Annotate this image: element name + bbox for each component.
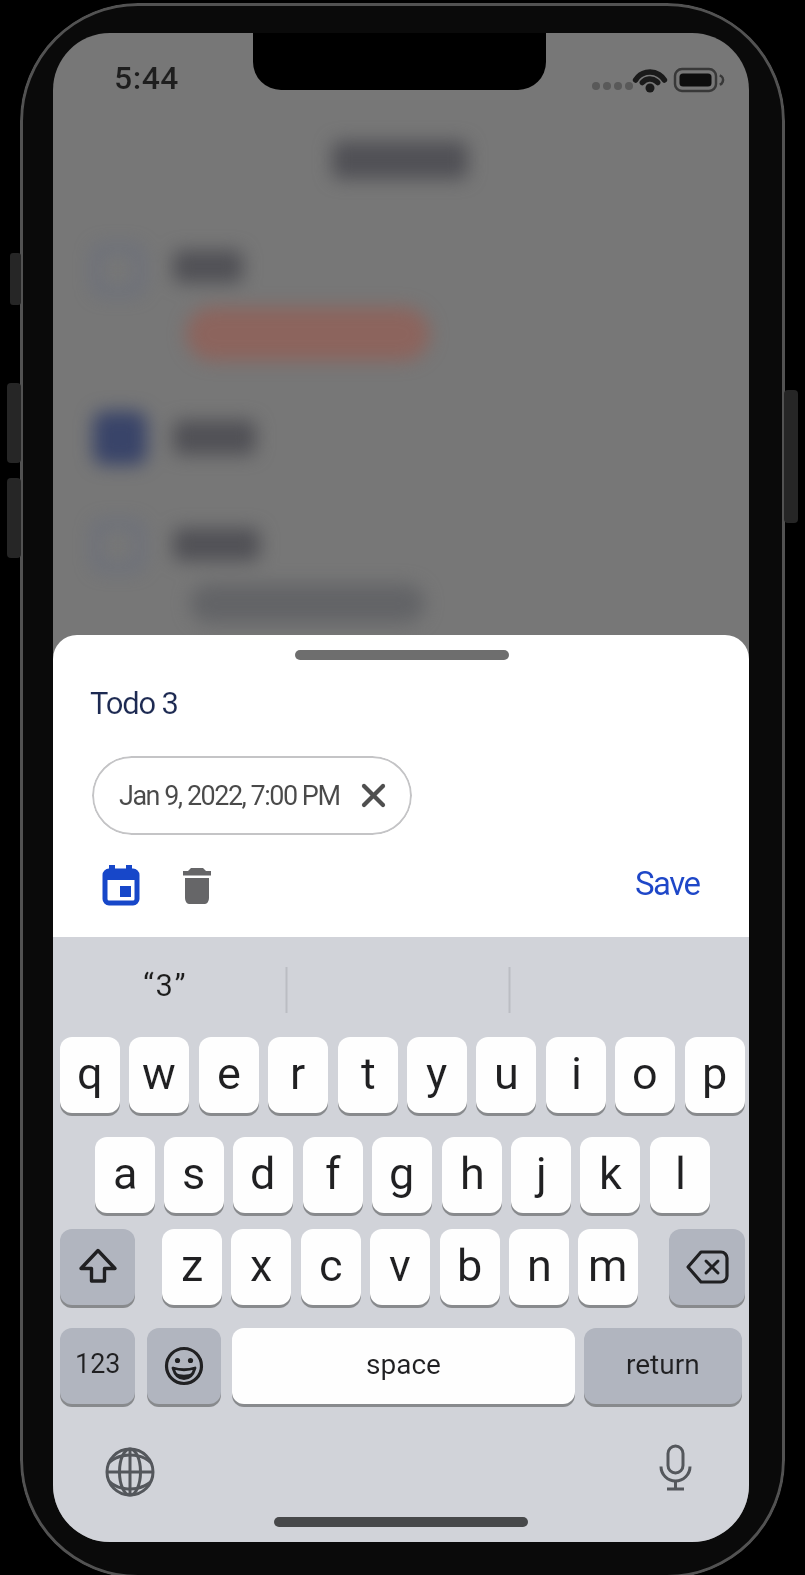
button[interactable]: t [338, 1037, 398, 1113]
staticText: s [182, 1147, 206, 1200]
staticText: j [536, 1147, 547, 1200]
button[interactable]: space [232, 1328, 575, 1404]
staticText: m [588, 1239, 628, 1292]
button[interactable]: j [511, 1137, 571, 1213]
button[interactable] [649, 1442, 701, 1494]
staticText: g [389, 1147, 415, 1200]
button[interactable]: Save [635, 864, 700, 903]
button[interactable]: y [407, 1037, 467, 1113]
staticText: z [181, 1239, 204, 1292]
button[interactable]: f [303, 1137, 363, 1213]
button[interactable]: o [615, 1037, 675, 1113]
staticText: t [361, 1047, 376, 1100]
button[interactable]: m [578, 1229, 638, 1305]
staticText: n [527, 1239, 552, 1292]
button[interactable] [147, 1328, 221, 1404]
button[interactable]: return [584, 1328, 742, 1404]
staticText: o [632, 1047, 658, 1100]
staticText: space [366, 1348, 441, 1381]
button[interactable]: z [162, 1229, 222, 1305]
button[interactable]: p [685, 1037, 745, 1113]
button[interactable]: g [372, 1137, 432, 1213]
button[interactable]: k [580, 1137, 640, 1213]
staticText: d [250, 1147, 276, 1200]
button[interactable]: n [509, 1229, 569, 1305]
staticText: Todo 3 [90, 685, 178, 721]
staticText: 123 [75, 1348, 121, 1380]
staticText: return [626, 1348, 700, 1381]
staticText: l [675, 1147, 686, 1200]
staticText: b [457, 1239, 483, 1292]
button[interactable]: x [231, 1229, 291, 1305]
button[interactable]: c [301, 1229, 361, 1305]
staticText: Jan 9, 2022, 7:00 PM [119, 780, 340, 812]
staticText: c [319, 1239, 343, 1292]
button[interactable]: d [233, 1137, 293, 1213]
button[interactable]: s [164, 1137, 224, 1213]
staticText: f [325, 1147, 341, 1200]
staticText: i [571, 1047, 582, 1100]
button[interactable] [60, 1229, 135, 1305]
button[interactable] [91, 857, 149, 915]
button[interactable] [669, 1229, 745, 1305]
staticText: v [389, 1239, 411, 1292]
button[interactable]: i [546, 1037, 606, 1113]
staticText: u [494, 1047, 519, 1100]
button[interactable]: a [95, 1137, 155, 1213]
staticText: k [599, 1147, 622, 1200]
staticText: r [290, 1047, 306, 1100]
button[interactable]: b [440, 1229, 500, 1305]
button[interactable] [168, 857, 226, 915]
button[interactable]: w [129, 1037, 189, 1113]
staticText: a [113, 1147, 138, 1200]
button[interactable]: e [199, 1037, 259, 1113]
button[interactable]: r [268, 1037, 328, 1113]
staticText: h [460, 1147, 485, 1200]
button[interactable] [104, 1446, 156, 1498]
button[interactable]: l [650, 1137, 710, 1213]
staticText: e [217, 1047, 241, 1100]
staticText: w [142, 1047, 176, 1100]
button[interactable]: 123 [60, 1328, 135, 1404]
button[interactable]: Jan 9, 2022, 7:00 PM [92, 756, 412, 835]
button[interactable]: “3” [143, 967, 187, 1003]
staticText: y [426, 1047, 448, 1100]
button[interactable]: q [60, 1037, 120, 1113]
staticText: p [702, 1047, 728, 1100]
button[interactable]: h [442, 1137, 502, 1213]
staticText: q [77, 1047, 103, 1100]
staticText: 5:44 [114, 59, 180, 97]
button[interactable]: u [476, 1037, 536, 1113]
staticText: x [250, 1239, 273, 1292]
button[interactable]: v [370, 1229, 430, 1305]
